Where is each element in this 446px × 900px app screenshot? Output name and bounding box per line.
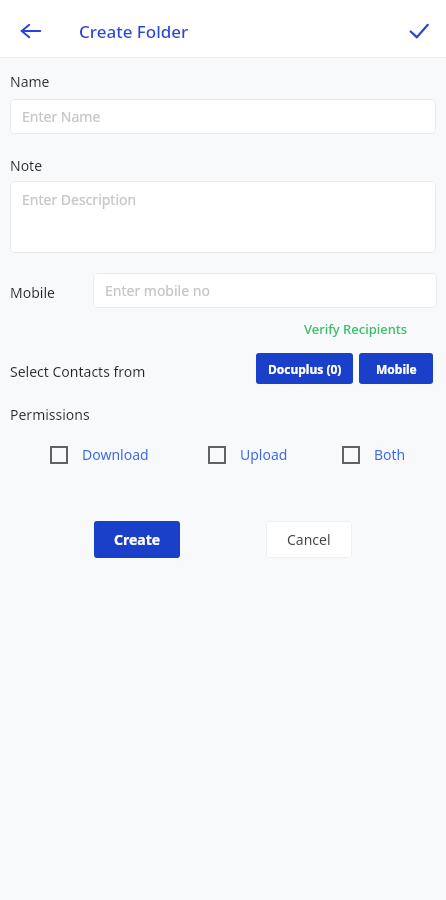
staticText: Create Folder	[79, 20, 189, 43]
button[interactable]: Both	[336, 441, 412, 468]
button[interactable]: Enter Name	[10, 99, 436, 134]
staticText: Select Contacts from	[10, 362, 146, 381]
staticText: Permissions	[10, 405, 90, 424]
staticText: Enter Name	[22, 107, 101, 126]
staticText: Create	[114, 530, 161, 549]
staticText: Enter Description	[22, 190, 137, 209]
button[interactable]: Confirm	[398, 10, 440, 52]
button[interactable]: Upload	[202, 441, 294, 468]
button[interactable]: Enter mobile no	[93, 273, 437, 308]
button[interactable]: Download	[44, 441, 155, 468]
staticText: Note	[10, 156, 43, 175]
staticText: Enter mobile no	[105, 281, 210, 300]
staticText: Name	[10, 72, 50, 91]
button[interactable]: Verify Recipients	[300, 318, 412, 340]
button[interactable]: Docuplus (0)	[256, 353, 353, 384]
staticText: Mobile	[376, 361, 417, 377]
staticText: Verify Recipients	[304, 320, 408, 338]
button[interactable]: Mobile	[359, 353, 433, 384]
staticText: Docuplus (0)	[268, 361, 342, 377]
button[interactable]: Create	[94, 521, 180, 558]
staticText: Mobile	[10, 283, 55, 302]
staticText: Both	[374, 445, 406, 464]
staticText: Download	[82, 445, 149, 464]
button[interactable]: Cancel	[266, 521, 352, 558]
staticText: Cancel	[287, 530, 331, 549]
staticText: Upload	[240, 445, 288, 464]
button[interactable]: Enter Description	[10, 181, 436, 253]
button[interactable]: Back	[10, 10, 52, 52]
